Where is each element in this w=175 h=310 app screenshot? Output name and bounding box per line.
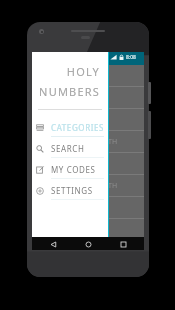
staticText: 8:08: [126, 54, 136, 61]
other: Settings: [36, 187, 44, 195]
staticText: TH: [108, 137, 118, 147]
button[interactable]: Search: [32, 140, 108, 161]
button[interactable]: Home: [83, 239, 93, 249]
button[interactable]: My codes: [32, 161, 108, 182]
other: Categories: [36, 124, 44, 132]
staticText: SETTINGS: [51, 185, 93, 196]
staticText: MY CODES: [51, 164, 96, 175]
button[interactable]: Back: [48, 239, 58, 249]
staticText: HOLY: [66, 64, 100, 79]
staticText: SEARCH: [51, 143, 85, 154]
staticText: TH: [108, 181, 118, 191]
button[interactable]: Categories: [32, 119, 108, 140]
staticText: CATEGORIES: [51, 122, 105, 133]
button[interactable]: Recents: [118, 239, 128, 249]
staticText: NUMBERS: [39, 84, 100, 99]
button[interactable]: Settings: [32, 182, 108, 203]
other: My codes: [36, 166, 44, 174]
other: Search: [36, 145, 44, 153]
